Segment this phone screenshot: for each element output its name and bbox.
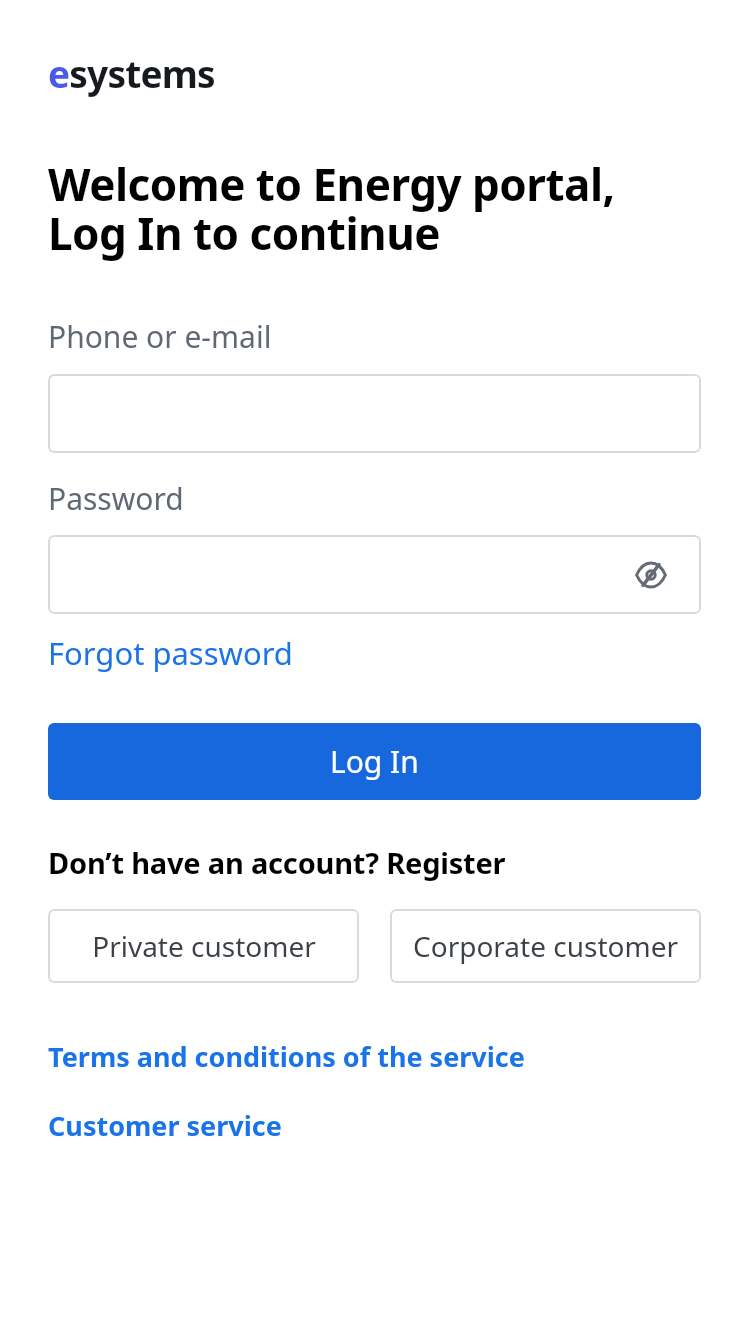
button[interactable] (48, 374, 701, 453)
button[interactable]: Log In (48, 723, 701, 800)
button[interactable]: Show password (629, 553, 673, 597)
staticText: Password (48, 478, 184, 519)
staticText: Log In (330, 741, 419, 782)
button[interactable]: Forgot password (48, 628, 293, 678)
staticText: Private customer (92, 927, 316, 965)
staticText: Phone or e-mail (48, 316, 272, 357)
staticText: Don’t have an account? Register (48, 843, 506, 882)
button[interactable]: Customer service (48, 1102, 282, 1149)
button[interactable]: Private customer (48, 909, 359, 983)
staticText: Customer service (48, 1107, 282, 1144)
button[interactable]: Terms and conditions of the service (48, 1033, 525, 1080)
button[interactable]: Corporate customer (390, 909, 701, 983)
staticText: esystems (48, 48, 215, 98)
staticText: Terms and conditions of the service (48, 1038, 525, 1075)
staticText: Corporate customer (413, 927, 678, 965)
staticText: Forgot password (48, 632, 293, 674)
staticText: Welcome to Energy portal, Log In to cont… (48, 154, 615, 263)
button[interactable]: Show password (48, 535, 701, 614)
